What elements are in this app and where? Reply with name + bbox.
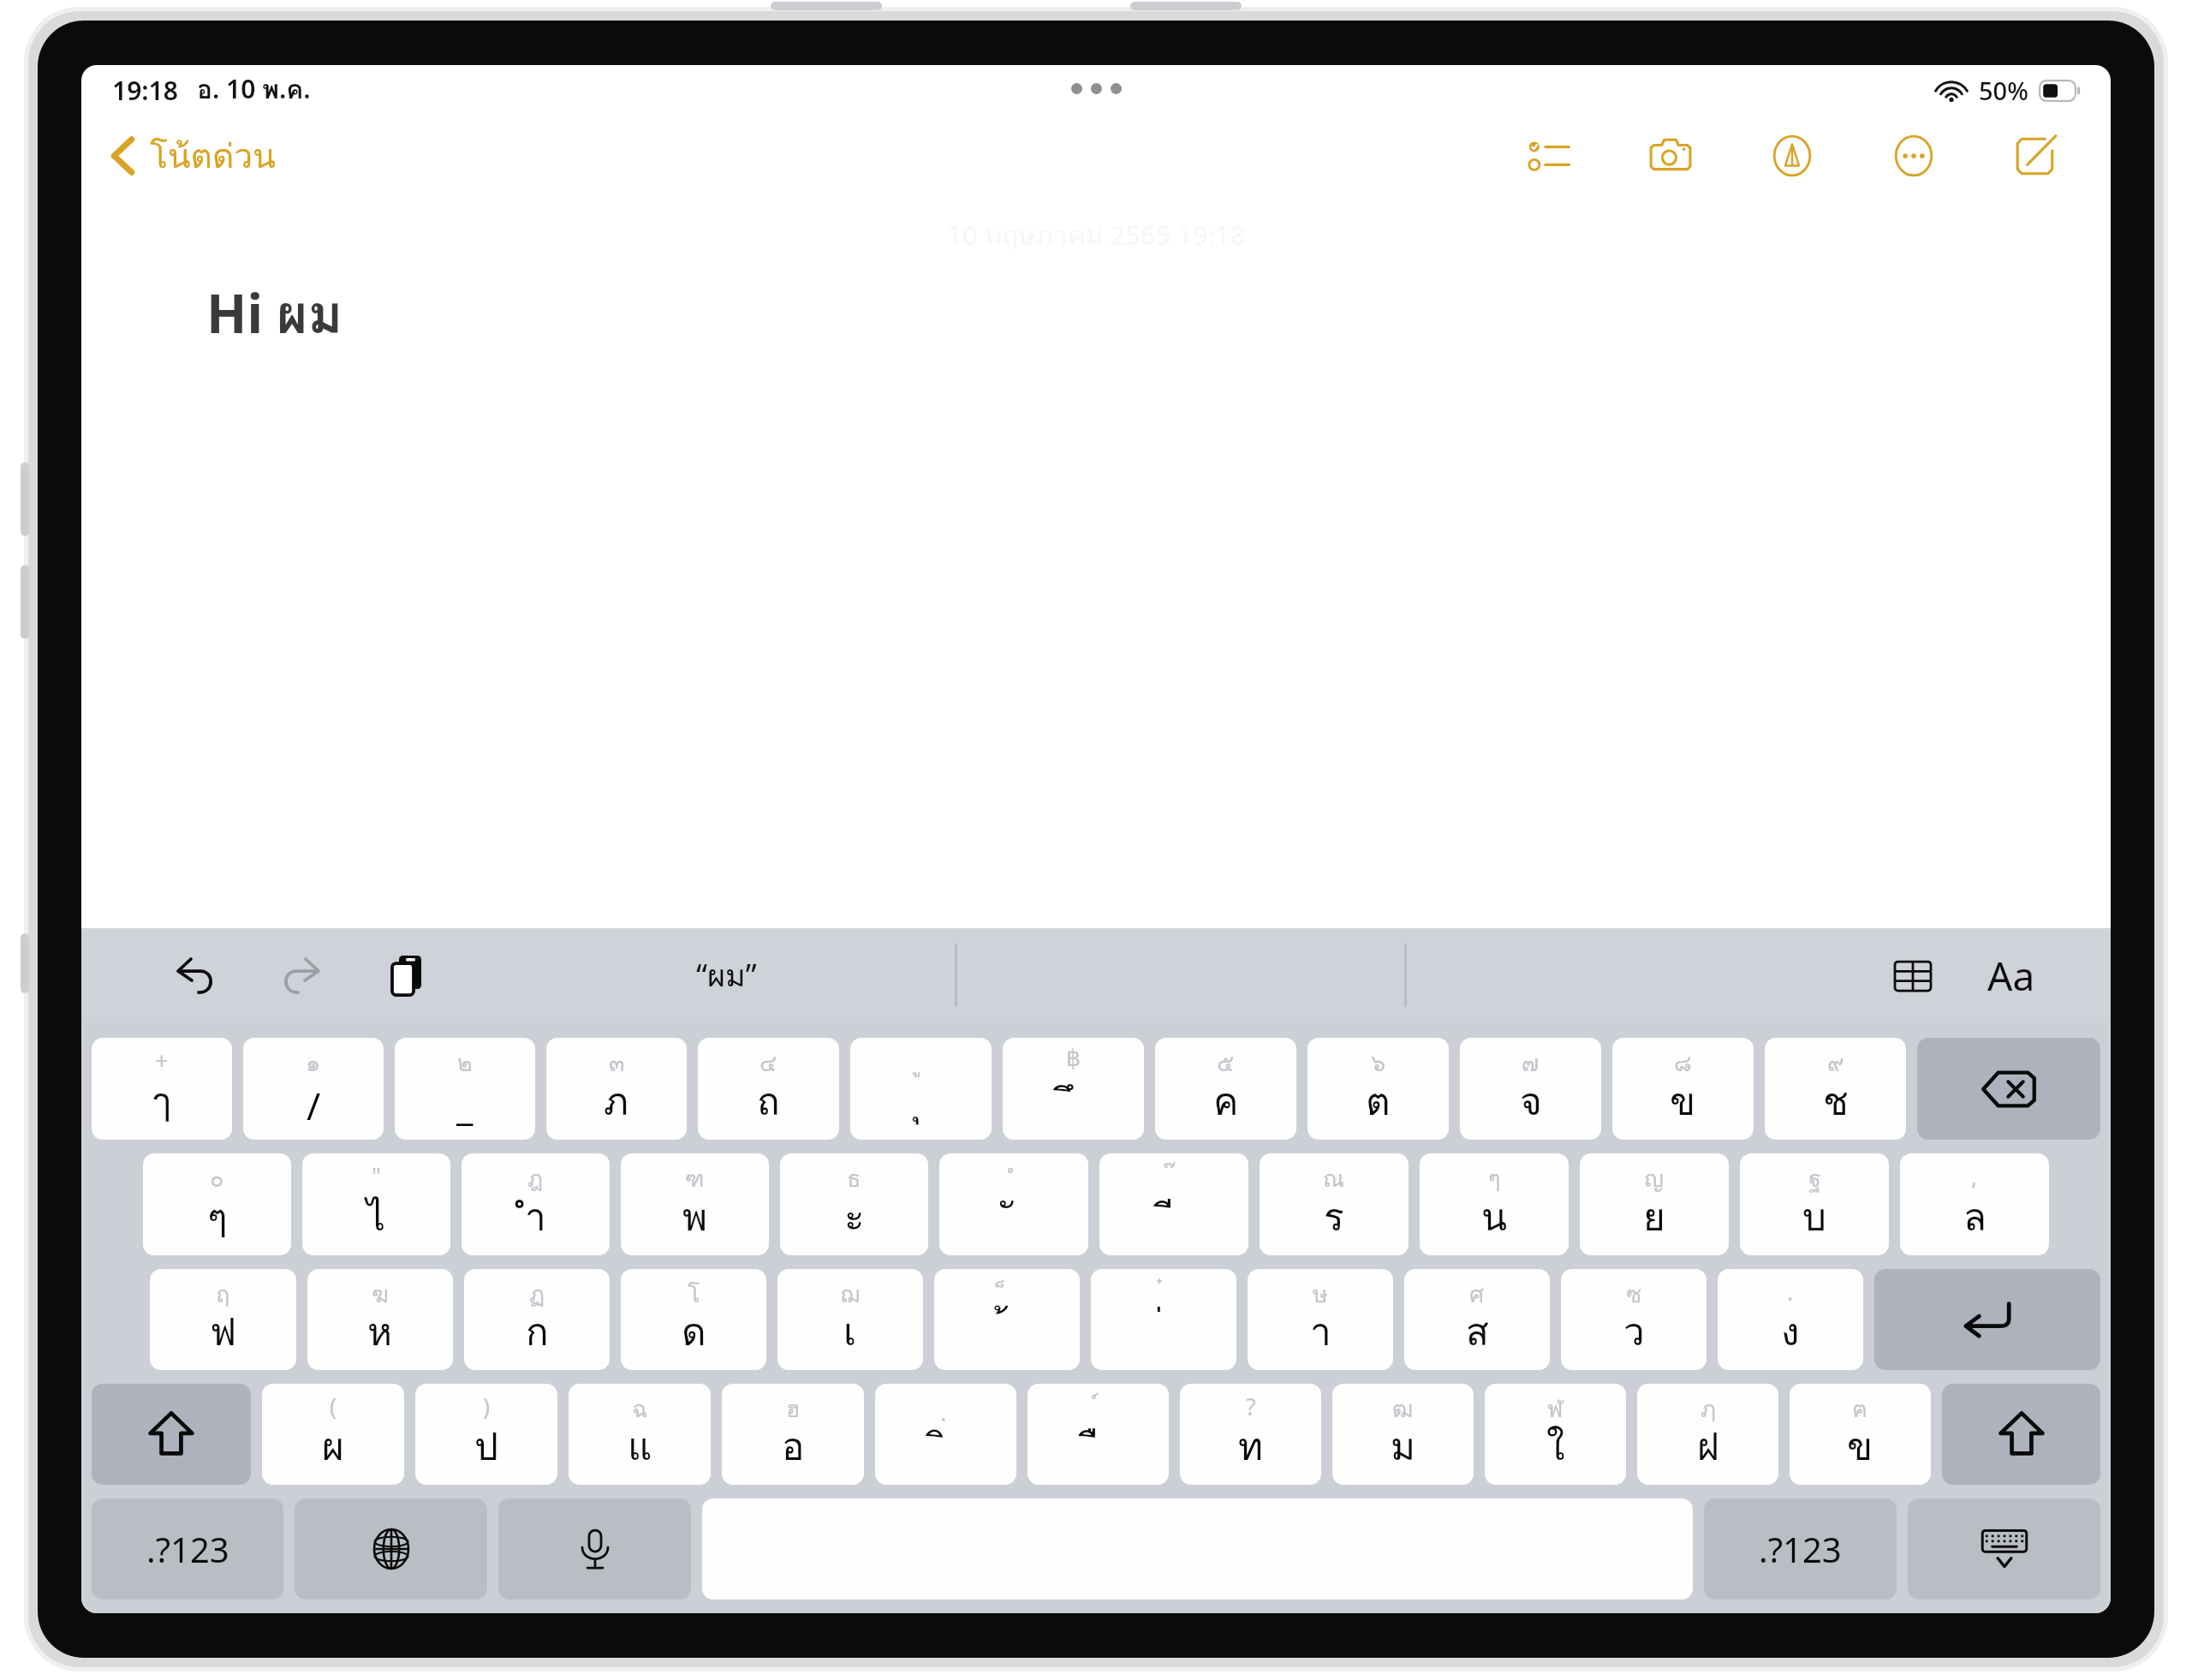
button[interactable]: ณ xyxy=(1260,1153,1409,1255)
button[interactable]: Markup xyxy=(1765,128,1820,183)
button[interactable]: ๋ xyxy=(1091,1269,1236,1370)
staticText: ศ xyxy=(1469,1276,1485,1313)
button[interactable]: ฑ xyxy=(621,1153,769,1255)
button[interactable]: ? xyxy=(1180,1384,1321,1485)
staticText: ฆ xyxy=(372,1276,390,1313)
button[interactable]: ๆ xyxy=(1420,1153,1569,1255)
button[interactable]: ฅ xyxy=(1790,1384,1931,1485)
button[interactable]: Backspace xyxy=(1917,1038,2100,1140)
button[interactable]: ฎ xyxy=(462,1153,610,1255)
button[interactable]: ๔ xyxy=(698,1038,839,1140)
staticText: ม xyxy=(1391,1416,1416,1476)
staticText: ฿ xyxy=(1066,1045,1081,1071)
button[interactable]: ็ xyxy=(934,1269,1080,1370)
button[interactable]: ๕ xyxy=(1155,1038,1296,1140)
staticText: ซ xyxy=(1626,1276,1642,1313)
staticText: Aa xyxy=(1987,949,2035,1003)
button[interactable]: ฌ xyxy=(777,1269,923,1370)
button[interactable]: ๐ xyxy=(143,1153,291,1255)
staticText: ) xyxy=(483,1391,491,1422)
button[interactable]: Numbers xyxy=(92,1498,283,1600)
button[interactable]: ๖ xyxy=(1307,1038,1449,1140)
button[interactable]: ๒ xyxy=(395,1038,535,1140)
staticText: ฟ xyxy=(210,1302,237,1361)
button[interactable]: Paste xyxy=(379,947,436,1004)
button[interactable]: ) xyxy=(415,1384,557,1485)
button[interactable]: ฆ xyxy=(307,1269,453,1370)
staticText: ๐ xyxy=(210,1160,224,1197)
staticText: ฝ xyxy=(1697,1416,1719,1476)
button[interactable]: Shift xyxy=(1942,1384,2100,1485)
button[interactable]: ฦ xyxy=(1637,1384,1778,1485)
button[interactable]: Redo xyxy=(273,947,330,1004)
button[interactable]: ์ xyxy=(1027,1384,1169,1485)
button[interactable]: ๙ xyxy=(1765,1038,1906,1140)
button[interactable]: Compose xyxy=(2008,128,2063,183)
staticText: ฤ xyxy=(216,1276,230,1313)
staticText: ข xyxy=(1670,1071,1696,1131)
button[interactable]: Checklist xyxy=(1522,128,1576,183)
button[interactable]: ฤ xyxy=(150,1269,296,1370)
button[interactable]: ฉ xyxy=(569,1384,711,1485)
staticText: " xyxy=(372,1160,382,1192)
button[interactable]: ซ xyxy=(1561,1269,1707,1370)
staticText: อ xyxy=(782,1416,805,1476)
staticText: ญ xyxy=(1644,1160,1665,1197)
button[interactable]: Insert table xyxy=(1885,948,1941,1004)
button[interactable]: Shift xyxy=(92,1384,251,1485)
button[interactable]: More xyxy=(1886,128,1941,183)
button[interactable]: ศ xyxy=(1404,1269,1550,1370)
button[interactable]: Change keyboard xyxy=(295,1498,487,1600)
staticText: ณ xyxy=(1323,1160,1345,1197)
staticText: ฮ xyxy=(786,1391,801,1427)
button[interactable]: Return xyxy=(1874,1269,2100,1370)
button[interactable]: ๘ xyxy=(1612,1038,1754,1140)
button[interactable]: . xyxy=(1718,1269,1863,1370)
button[interactable]: โ xyxy=(621,1269,766,1370)
staticText: น xyxy=(1481,1187,1508,1247)
button[interactable]: Space xyxy=(702,1498,1693,1600)
button[interactable]: ฺ xyxy=(875,1384,1016,1485)
button[interactable]: Camera xyxy=(1643,128,1698,183)
staticText: ร xyxy=(1324,1187,1344,1247)
button[interactable]: ฮ xyxy=(722,1384,864,1485)
button[interactable]: , xyxy=(1900,1153,2049,1255)
button[interactable]: ฿ xyxy=(1003,1038,1144,1140)
button[interactable]: ( xyxy=(262,1384,404,1485)
button[interactable]: ๓ xyxy=(546,1038,687,1140)
staticText: , xyxy=(1971,1160,1978,1192)
button[interactable]: ญ xyxy=(1580,1153,1729,1255)
button[interactable]: ๗ xyxy=(1460,1038,1601,1140)
button[interactable]: " xyxy=(302,1153,450,1255)
button[interactable]: ฬ xyxy=(1485,1384,1626,1485)
button[interactable]: Dictate xyxy=(498,1498,691,1600)
staticText: ๓ xyxy=(609,1045,625,1081)
button[interactable]: “ผม” xyxy=(681,946,772,1005)
staticText: า xyxy=(1310,1302,1331,1361)
staticText: ๆ xyxy=(207,1187,228,1247)
button[interactable]: ๊ xyxy=(1099,1153,1248,1255)
button[interactable]: ษ xyxy=(1248,1269,1393,1370)
button[interactable]: + xyxy=(92,1038,232,1140)
button[interactable]: ฒ xyxy=(1332,1384,1474,1485)
staticText: ป xyxy=(474,1416,498,1476)
staticText: ฐ xyxy=(1808,1160,1821,1197)
button[interactable]: ู xyxy=(850,1038,992,1140)
staticText: + xyxy=(155,1045,169,1076)
staticText: ล xyxy=(1963,1187,1986,1247)
staticText: เ xyxy=(843,1302,857,1361)
button[interactable]: Aa xyxy=(1979,945,2044,1006)
staticText: ๔ xyxy=(759,1045,777,1081)
button[interactable]: ํ xyxy=(939,1153,1088,1255)
button[interactable]: ธ xyxy=(780,1153,928,1255)
button[interactable]: Undo xyxy=(167,947,223,1004)
button[interactable]: ฐ xyxy=(1740,1153,1889,1255)
staticText: ง xyxy=(1781,1302,1800,1361)
staticText: ส xyxy=(1466,1302,1489,1361)
button[interactable]: ๑ xyxy=(243,1038,384,1140)
button[interactable]: Hide keyboard xyxy=(1908,1498,2100,1600)
button[interactable]: ฏ xyxy=(464,1269,610,1370)
button[interactable]: โน้ตด่วน xyxy=(98,122,288,189)
button[interactable]: Numbers xyxy=(1704,1498,1897,1600)
